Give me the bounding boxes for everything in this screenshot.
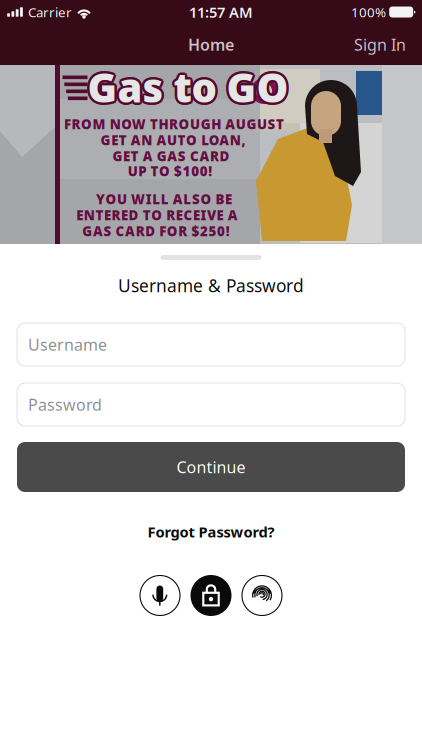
- staticText: Gas to GO: [86, 62, 287, 115]
- staticText: Gas to GO: [87, 63, 288, 116]
- staticText: Home: [188, 34, 234, 55]
- staticText: Gas to GO: [86, 59, 287, 112]
- staticText: GET A GAS CARD: [112, 147, 229, 165]
- staticText: Gas to GO: [87, 58, 288, 111]
- staticText: Gas to GO: [90, 60, 291, 113]
- staticText: ENTERED TO RECEIVE A: [76, 206, 238, 224]
- staticText: YOU WILL ALSO BE: [96, 190, 232, 208]
- staticText: GET AN AUTO LOAN,: [101, 131, 245, 149]
- staticText: Gas to GO: [87, 60, 288, 113]
- staticText: Gas to GO: [85, 60, 286, 113]
- button[interactable]: Forgot Password?: [133, 514, 288, 549]
- button[interactable]: Sign In: [338, 25, 422, 64]
- staticText: FROM NOW THROUGH AUGUST: [64, 115, 284, 133]
- staticText: Continue: [176, 456, 245, 478]
- staticText: GAS CARD FOR $250!: [82, 222, 230, 240]
- staticText: 11:57 AM: [189, 2, 253, 22]
- staticText: Sign In: [354, 34, 406, 55]
- button[interactable]: Touch ID sign in: [239, 572, 285, 618]
- button[interactable]: Password sign in: [188, 572, 234, 618]
- staticText: UP TO $100!: [128, 162, 212, 180]
- staticText: Forgot Password?: [147, 522, 274, 541]
- button[interactable]: Username: [17, 323, 405, 366]
- staticText: Password: [28, 394, 102, 415]
- staticText: Carrier: [28, 3, 72, 21]
- staticText: Username: [28, 334, 107, 355]
- staticText: 100%: [351, 3, 386, 21]
- button[interactable]: Voice sign in: [137, 572, 183, 618]
- button[interactable]: Continue: [17, 442, 405, 492]
- button[interactable]: Password: [17, 383, 405, 426]
- staticText: Gas to GO: [89, 59, 290, 112]
- staticText: Username & Password: [118, 274, 304, 297]
- staticText: Gas to GO: [89, 62, 290, 115]
